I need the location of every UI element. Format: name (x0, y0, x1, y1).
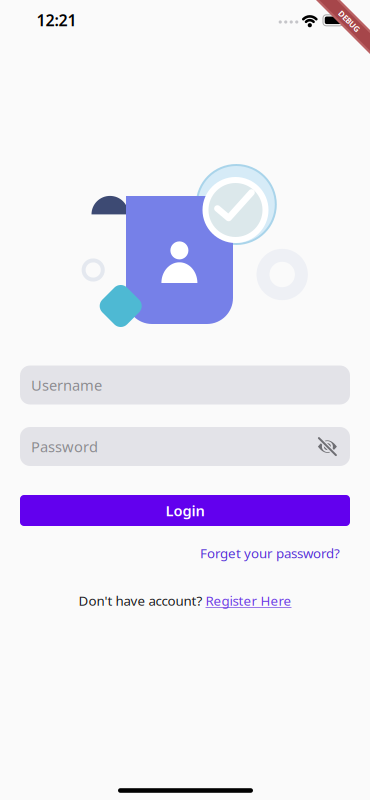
staticText: DEBUG (336, 16, 363, 27)
button[interactable]: Login (20, 495, 350, 526)
staticText: Register Here (205, 592, 291, 609)
staticText: Forget your password? (200, 544, 340, 562)
staticText: Don't have account? (78, 592, 205, 609)
button[interactable]: Password (20, 427, 350, 466)
staticText: Login (165, 501, 204, 520)
button[interactable]: Register Here (205, 592, 291, 609)
staticText: Username (31, 375, 102, 395)
button[interactable]: Show password (314, 434, 340, 460)
button[interactable]: Username (20, 365, 350, 404)
staticText: 12:21 (36, 9, 76, 31)
staticText: Password (31, 437, 98, 456)
button[interactable]: Forget your password? (200, 544, 340, 562)
